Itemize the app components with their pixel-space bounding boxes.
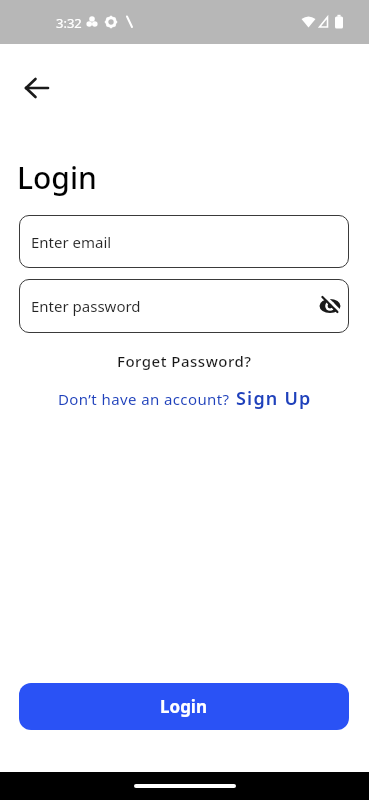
staticText: Don’t have an account?: [58, 389, 230, 409]
staticText: Login: [17, 157, 97, 198]
button[interactable]: Sign Up: [236, 386, 312, 411]
staticText: 3:32: [56, 14, 82, 32]
staticText: Enter email: [31, 232, 112, 252]
button[interactable]: [14, 65, 60, 111]
button[interactable]: Forget Password?: [117, 351, 252, 371]
button[interactable]: Enter password: [19, 279, 349, 333]
button[interactable]: Enter email: [19, 215, 349, 268]
button[interactable]: Login: [19, 683, 349, 730]
staticText: Enter password: [31, 296, 141, 316]
staticText: Login: [160, 695, 208, 718]
